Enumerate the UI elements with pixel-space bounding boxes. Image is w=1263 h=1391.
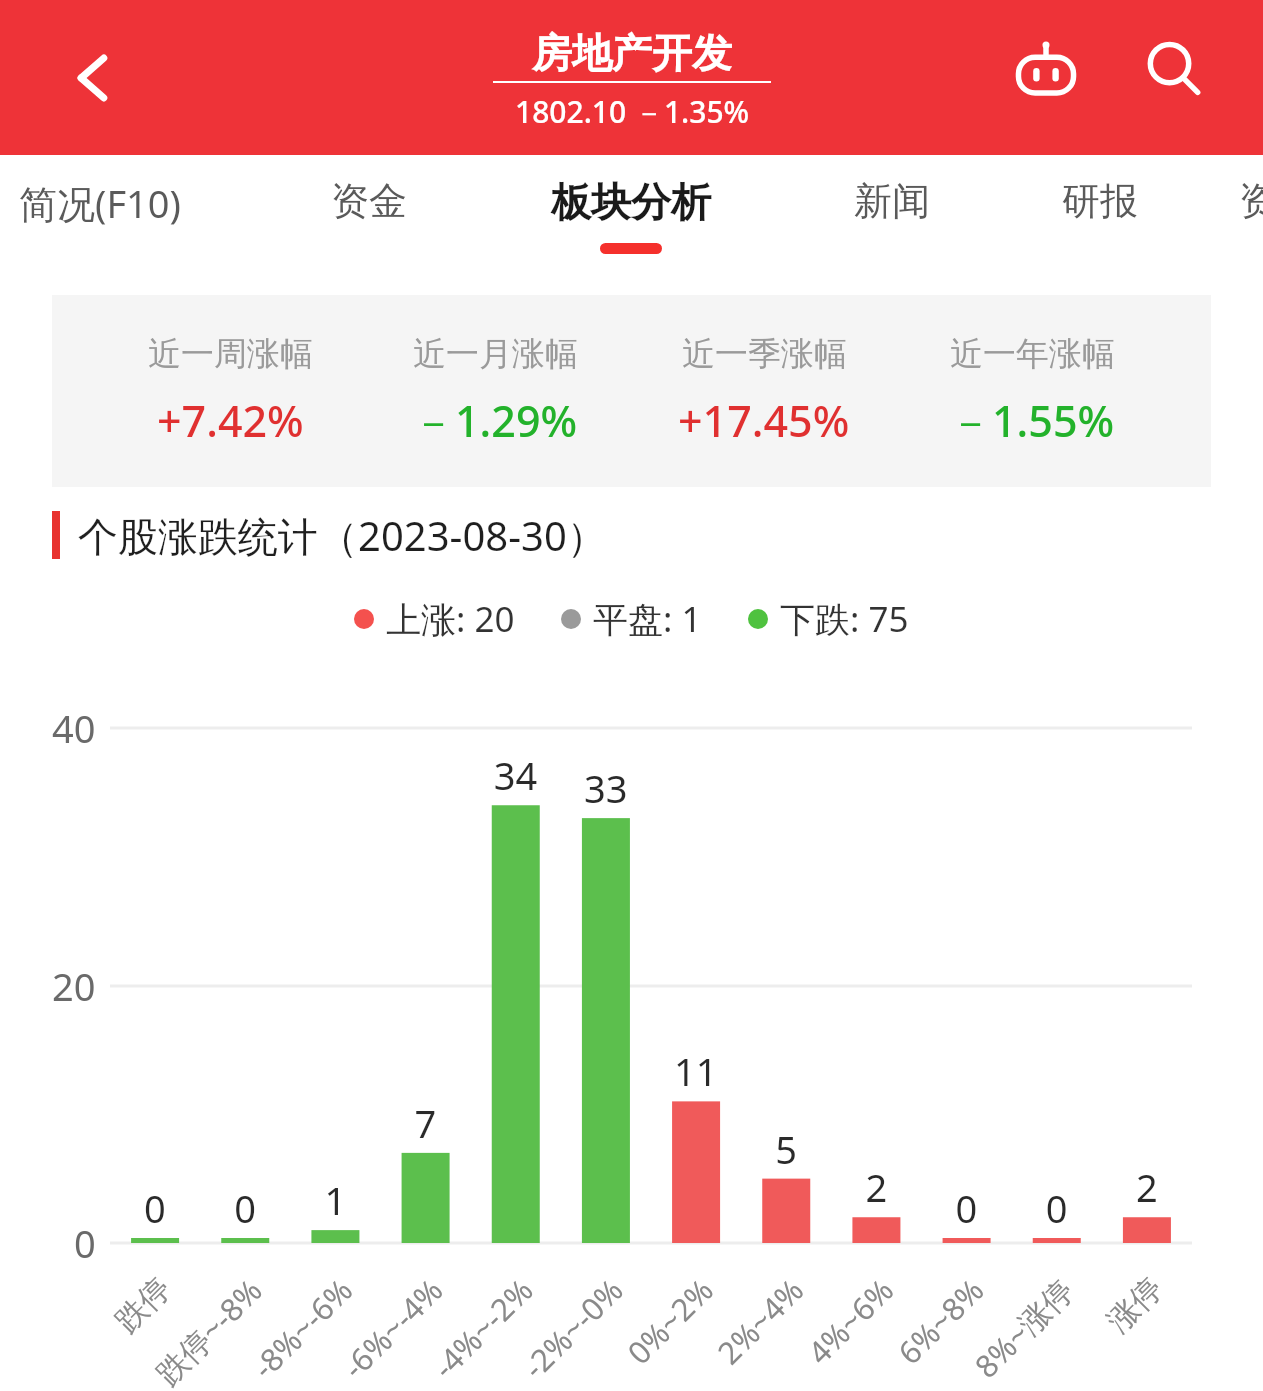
button[interactable]: 简况(F10) (0, 155, 233, 295)
staticText: +17.45% (678, 391, 850, 450)
staticText: 简况(F10) (19, 177, 181, 229)
button[interactable]: 近一年涨幅 (945, 333, 1119, 450)
staticText: 资金 (331, 177, 407, 225)
button[interactable]: 平盘: 1 (561, 595, 702, 643)
staticText: 近一季涨幅 (682, 333, 847, 375)
staticText: 房地产开发 (532, 28, 732, 78)
staticText: 1802.10 －1.35% (515, 91, 750, 132)
button[interactable]: 新闻 (854, 155, 930, 295)
staticText: 平盘: 1 (593, 595, 702, 643)
staticText: 上涨: 20 (386, 595, 515, 643)
button[interactable]: 近一月涨幅 (408, 333, 582, 450)
staticText: 研报 (1062, 177, 1138, 225)
button[interactable]: 资金 (331, 155, 407, 295)
button[interactable]: 资 (1239, 155, 1263, 295)
button[interactable]: Search (1127, 23, 1221, 117)
staticText: 新闻 (854, 177, 930, 225)
button[interactable]: AI assistant (999, 23, 1093, 117)
staticText: －1.29% (412, 391, 578, 450)
staticText: －1.55% (949, 391, 1115, 450)
staticText: 资 (1239, 177, 1263, 225)
staticText: 近一周涨幅 (148, 333, 313, 375)
staticText: 下跌: 75 (780, 595, 909, 643)
staticText: 板块分析 (551, 177, 711, 227)
staticText: +7.42% (157, 391, 304, 450)
button[interactable]: 下跌: 75 (748, 595, 909, 643)
staticText: 个股涨跌统计（2023-08-30） (78, 508, 607, 563)
button[interactable]: 近一周涨幅 (144, 333, 317, 450)
button[interactable]: 研报 (1062, 155, 1138, 295)
staticText: 近一年涨幅 (950, 333, 1115, 375)
button[interactable]: 近一季涨幅 (674, 333, 854, 450)
button[interactable]: 上涨: 20 (354, 595, 515, 643)
button[interactable]: 板块分析 (551, 155, 711, 295)
staticText: 近一月涨幅 (413, 333, 578, 375)
button[interactable]: Back (38, 23, 148, 133)
